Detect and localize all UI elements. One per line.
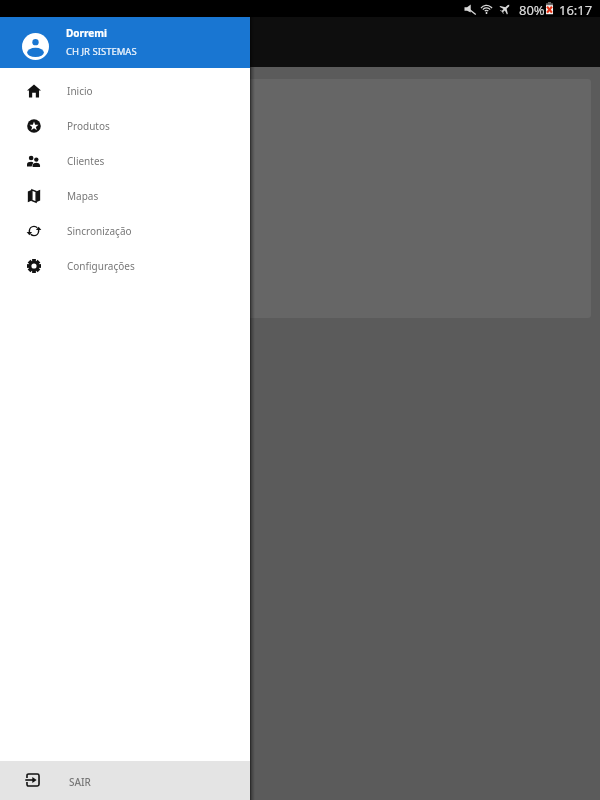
button[interactable]: Close navigation drawer xyxy=(250,0,600,800)
button[interactable]: Produtos xyxy=(0,108,250,143)
button[interactable]: Mapas xyxy=(0,178,250,213)
button[interactable]: Dorremi xyxy=(0,17,250,68)
staticText: Configurações xyxy=(67,259,135,273)
staticText: SAIR xyxy=(69,775,91,789)
staticText: Dorremi xyxy=(66,26,108,40)
button[interactable]: Sincronização xyxy=(0,213,250,248)
staticText: CH JR SISTEMAS xyxy=(66,45,137,58)
staticText: Inicio xyxy=(67,84,93,98)
staticText: Sincronização xyxy=(67,224,132,238)
staticText: 80% xyxy=(519,1,545,18)
button[interactable]: Clientes xyxy=(0,143,250,178)
button[interactable]: Configurações xyxy=(0,248,250,283)
staticText: Clientes xyxy=(67,154,105,168)
button[interactable]: Inicio xyxy=(0,73,250,108)
staticText: Produtos xyxy=(67,119,110,133)
staticText: 16:17 xyxy=(559,1,593,18)
button[interactable]: SAIR xyxy=(0,761,250,800)
staticText: Mapas xyxy=(67,189,99,203)
